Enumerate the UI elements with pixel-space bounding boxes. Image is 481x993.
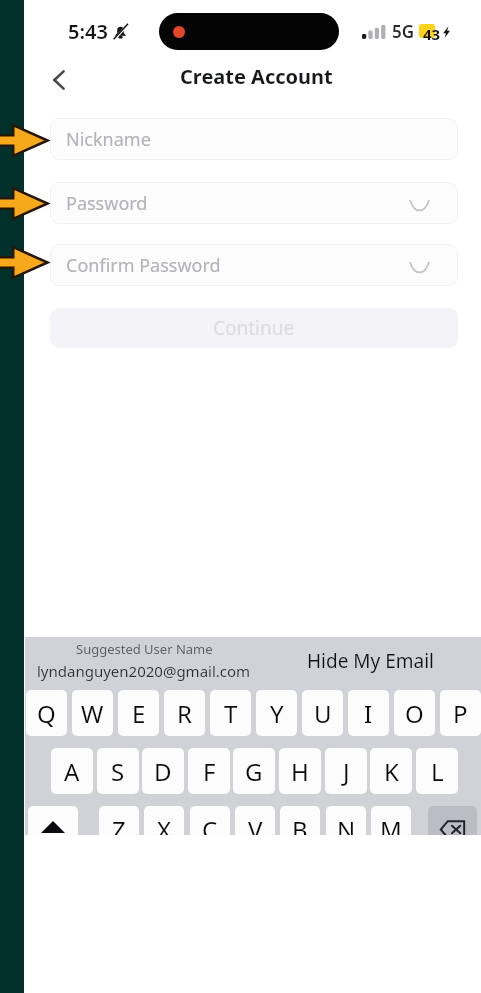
button[interactable]: S [97, 748, 139, 794]
staticText: 5G [392, 20, 415, 43]
button[interactable]: M [371, 806, 411, 835]
button[interactable]: E [118, 690, 159, 736]
button[interactable]: Confirm Password [50, 244, 458, 286]
button[interactable]: Continue [50, 308, 458, 348]
button[interactable]: Back [35, 60, 77, 100]
staticText: K [384, 755, 399, 788]
button[interactable]: Q [26, 690, 67, 736]
staticText: L [431, 755, 444, 788]
staticText: Confirm Password [66, 253, 221, 278]
staticText: O [405, 697, 424, 730]
button[interactable]: K [370, 748, 412, 794]
staticText: lyndanguyen2020@gmail.com [37, 661, 251, 681]
staticText: D [154, 755, 172, 788]
staticText: U [314, 697, 332, 730]
button[interactable]: P [440, 690, 481, 736]
staticText: M [380, 813, 402, 835]
button[interactable]: A [51, 748, 93, 794]
button[interactable]: Hide My Email [285, 639, 455, 683]
staticText: Z [112, 813, 126, 835]
staticText: I [364, 697, 373, 730]
staticText: J [343, 755, 350, 788]
staticText: F [203, 755, 216, 788]
button[interactable]: Password [50, 182, 458, 224]
button[interactable]: D [142, 748, 184, 794]
staticText: E [132, 697, 146, 730]
staticText: A [64, 755, 80, 788]
button[interactable]: V [235, 806, 275, 835]
button[interactable]: G [233, 748, 275, 794]
button[interactable]: J [325, 748, 367, 794]
button[interactable]: H [279, 748, 321, 794]
button[interactable]: F [188, 748, 230, 794]
staticText: 43 [423, 24, 441, 44]
staticText: P [453, 697, 468, 730]
staticText: Hide My Email [307, 648, 434, 674]
button[interactable]: U [302, 690, 343, 736]
button[interactable]: R [164, 690, 205, 736]
button[interactable]: B [280, 806, 320, 835]
staticText: R [177, 697, 192, 730]
staticText: Suggested User Name [76, 640, 213, 658]
button[interactable]: Z [99, 806, 139, 835]
button[interactable]: C [190, 806, 230, 835]
staticText: Password [66, 191, 148, 216]
staticText: V [248, 813, 263, 835]
button[interactable]: L [416, 748, 458, 794]
button[interactable]: Suggested User Name [25, 637, 275, 685]
staticText: X [157, 813, 172, 835]
staticText: B [292, 813, 308, 835]
button[interactable]: T [210, 690, 251, 736]
button[interactable]: X [144, 806, 184, 835]
other: Show password [410, 262, 429, 271]
staticText: S [111, 755, 125, 788]
button[interactable]: W [72, 690, 113, 736]
button[interactable]: Shift [28, 806, 78, 835]
other: Show password [410, 200, 429, 209]
staticText: Nickname [66, 127, 151, 152]
staticText: Y [270, 697, 284, 730]
staticText: T [224, 697, 238, 730]
button[interactable]: Y [256, 690, 297, 736]
staticText: Q [37, 697, 56, 730]
staticText: Continue [213, 315, 295, 341]
button[interactable]: N [326, 806, 366, 835]
staticText: H [291, 755, 309, 788]
staticText: N [337, 813, 356, 835]
staticText: Create Account [180, 63, 333, 90]
button[interactable]: I [348, 690, 389, 736]
staticText: C [202, 813, 218, 835]
button[interactable]: O [394, 690, 435, 736]
button[interactable]: Backspace [428, 806, 477, 835]
staticText: W [81, 697, 104, 730]
staticText: 5:43 [68, 18, 108, 45]
button[interactable]: Nickname [50, 118, 458, 160]
staticText: G [245, 755, 263, 788]
